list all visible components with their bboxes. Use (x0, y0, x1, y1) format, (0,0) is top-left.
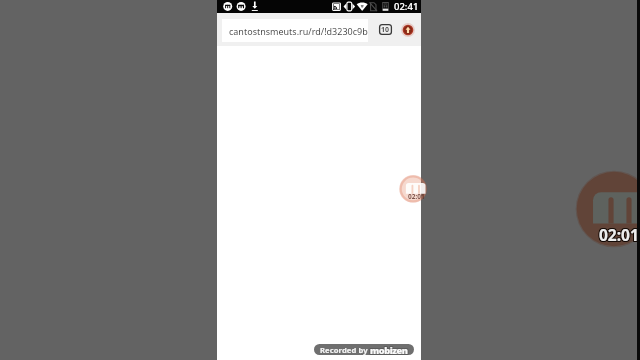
staticText: mobizen (371, 344, 409, 355)
staticText: 10 (381, 25, 390, 35)
button[interactable]: Opera menu (401, 23, 415, 37)
staticText: mobizen (369, 344, 407, 354)
staticText: mobizen (370, 344, 408, 355)
staticText: mobizen (369, 345, 407, 355)
staticText: mobizen (370, 344, 408, 354)
staticText: Recorded by (320, 345, 368, 355)
staticText: 02:41 (394, 0, 419, 13)
button[interactable] (217, 46, 421, 360)
button[interactable]: Tabs (379, 24, 392, 35)
button[interactable]: Recorded by (314, 344, 414, 355)
staticText: 02:01 (598, 224, 638, 245)
staticText: 02:01 (599, 223, 639, 244)
staticText: 02:01 (599, 225, 639, 246)
staticText: cantostnsmeuts.ru/rd/!d3230c9b (229, 25, 368, 37)
staticText: 02:01 (600, 224, 640, 245)
button[interactable]: cantostnsmeuts.ru/rd/!d3230c9b (222, 19, 368, 42)
staticText: 02:01 (600, 223, 640, 244)
staticText: 02:01 (600, 225, 640, 246)
staticText: mobizen (369, 344, 407, 355)
staticText: mobizen (371, 344, 409, 354)
staticText: 02:01 (408, 192, 425, 201)
staticText: 02:01 (599, 224, 639, 245)
staticText: 02:01 (598, 223, 638, 244)
staticText: mobizen (370, 345, 408, 355)
staticText: mobizen (371, 345, 409, 355)
staticText: 02:01 (598, 225, 638, 246)
